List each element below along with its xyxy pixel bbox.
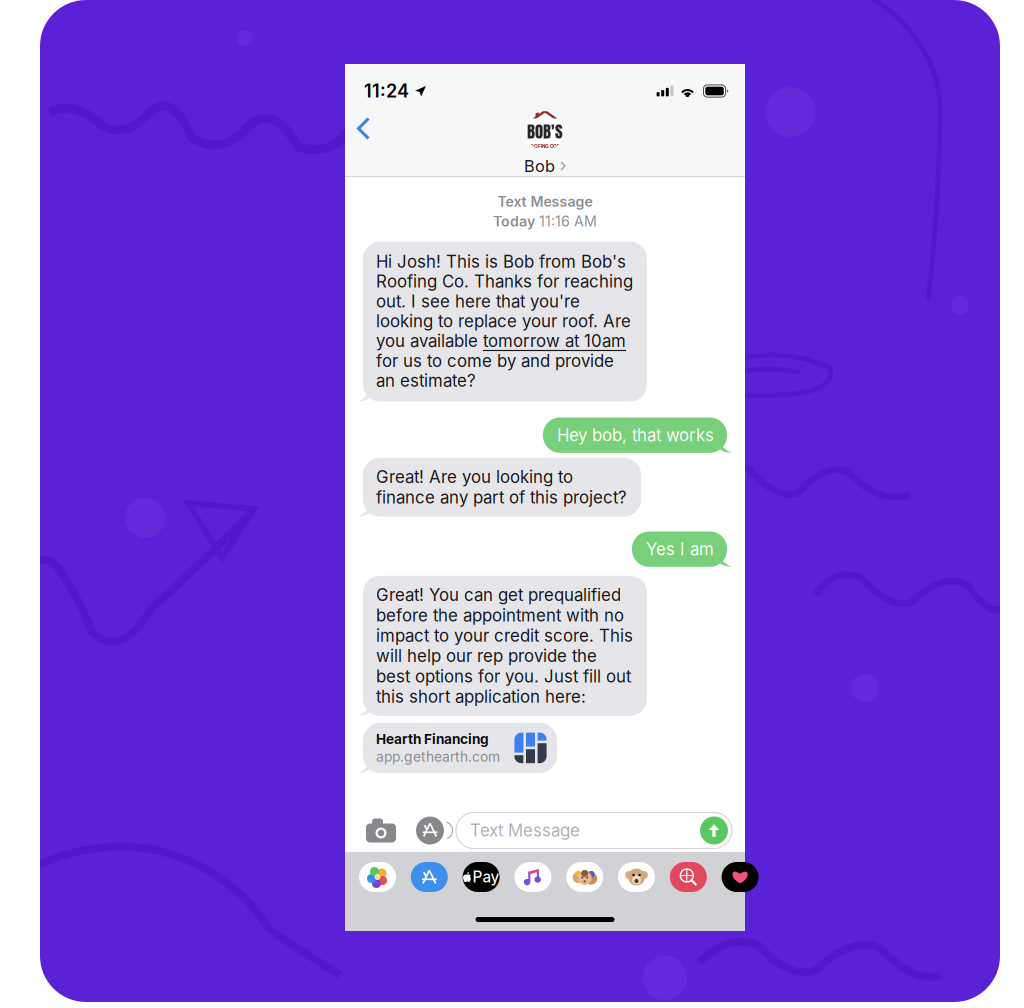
staticText: Pay (473, 868, 500, 886)
button[interactable]: Images (670, 862, 707, 892)
staticText: Text Message (497, 193, 592, 210)
staticText: app.gethearth.com (376, 748, 500, 765)
button[interactable]: Memoji (566, 862, 603, 892)
button[interactable]: BOB'S (524, 109, 566, 176)
staticText: Bob (524, 156, 555, 176)
button[interactable]: Camera (362, 810, 400, 850)
button[interactable]: Back (345, 114, 386, 171)
staticText: Yes I am (646, 539, 714, 559)
staticText: Today 11:16 AM (493, 213, 597, 230)
button[interactable]: Hearth Financing (363, 723, 557, 773)
button[interactable]: Photos (359, 862, 396, 892)
button[interactable]: Text Message (456, 812, 732, 848)
staticText: Text Message (470, 820, 580, 841)
staticText: BOB'S (527, 119, 563, 144)
staticText: ROOFING CORP (527, 144, 563, 149)
staticText: Great! You can get prequalified before t… (376, 585, 633, 707)
button[interactable]: Music (514, 862, 551, 892)
button[interactable]: Digital Touch (722, 862, 759, 892)
button[interactable]: Apps (413, 810, 447, 850)
staticText: Hey bob, that works (557, 425, 714, 445)
staticText: Great! Are you looking to finance any pa… (376, 467, 627, 507)
button[interactable]: Apple Pay (463, 862, 500, 892)
staticText: Hearth Financing (376, 731, 489, 747)
button[interactable]: App Store (411, 862, 448, 892)
staticText: 11:24 (364, 80, 409, 102)
button[interactable]: Animoji (618, 862, 655, 892)
staticText: Hi Josh! This is Bob from Bob's Roofing … (376, 252, 633, 390)
